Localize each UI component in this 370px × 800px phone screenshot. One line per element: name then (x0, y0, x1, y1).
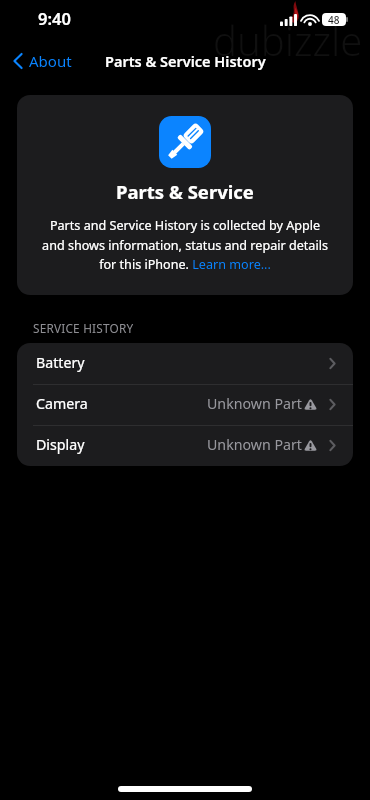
staticText: 9:40 (38, 7, 71, 29)
button[interactable]: Display (17, 425, 353, 466)
button[interactable]: About (0, 43, 82, 79)
staticText: Unknown Part (207, 394, 302, 413)
staticText: Parts & Service History (105, 51, 266, 71)
staticText: Display (36, 435, 85, 454)
staticText: Parts & Service (116, 179, 254, 204)
staticText: 48 (328, 13, 340, 26)
staticText: Unknown Part (207, 435, 302, 454)
button[interactable]: Camera (17, 384, 353, 425)
staticText: Camera (36, 394, 88, 413)
staticText: SERVICE HISTORY (33, 320, 134, 336)
staticText: About (29, 51, 72, 71)
staticText: dubizzle (213, 13, 363, 67)
button[interactable]: Battery (17, 343, 353, 384)
staticText: Battery (36, 353, 85, 372)
staticText: Parts and Service History is collected b… (42, 217, 328, 273)
